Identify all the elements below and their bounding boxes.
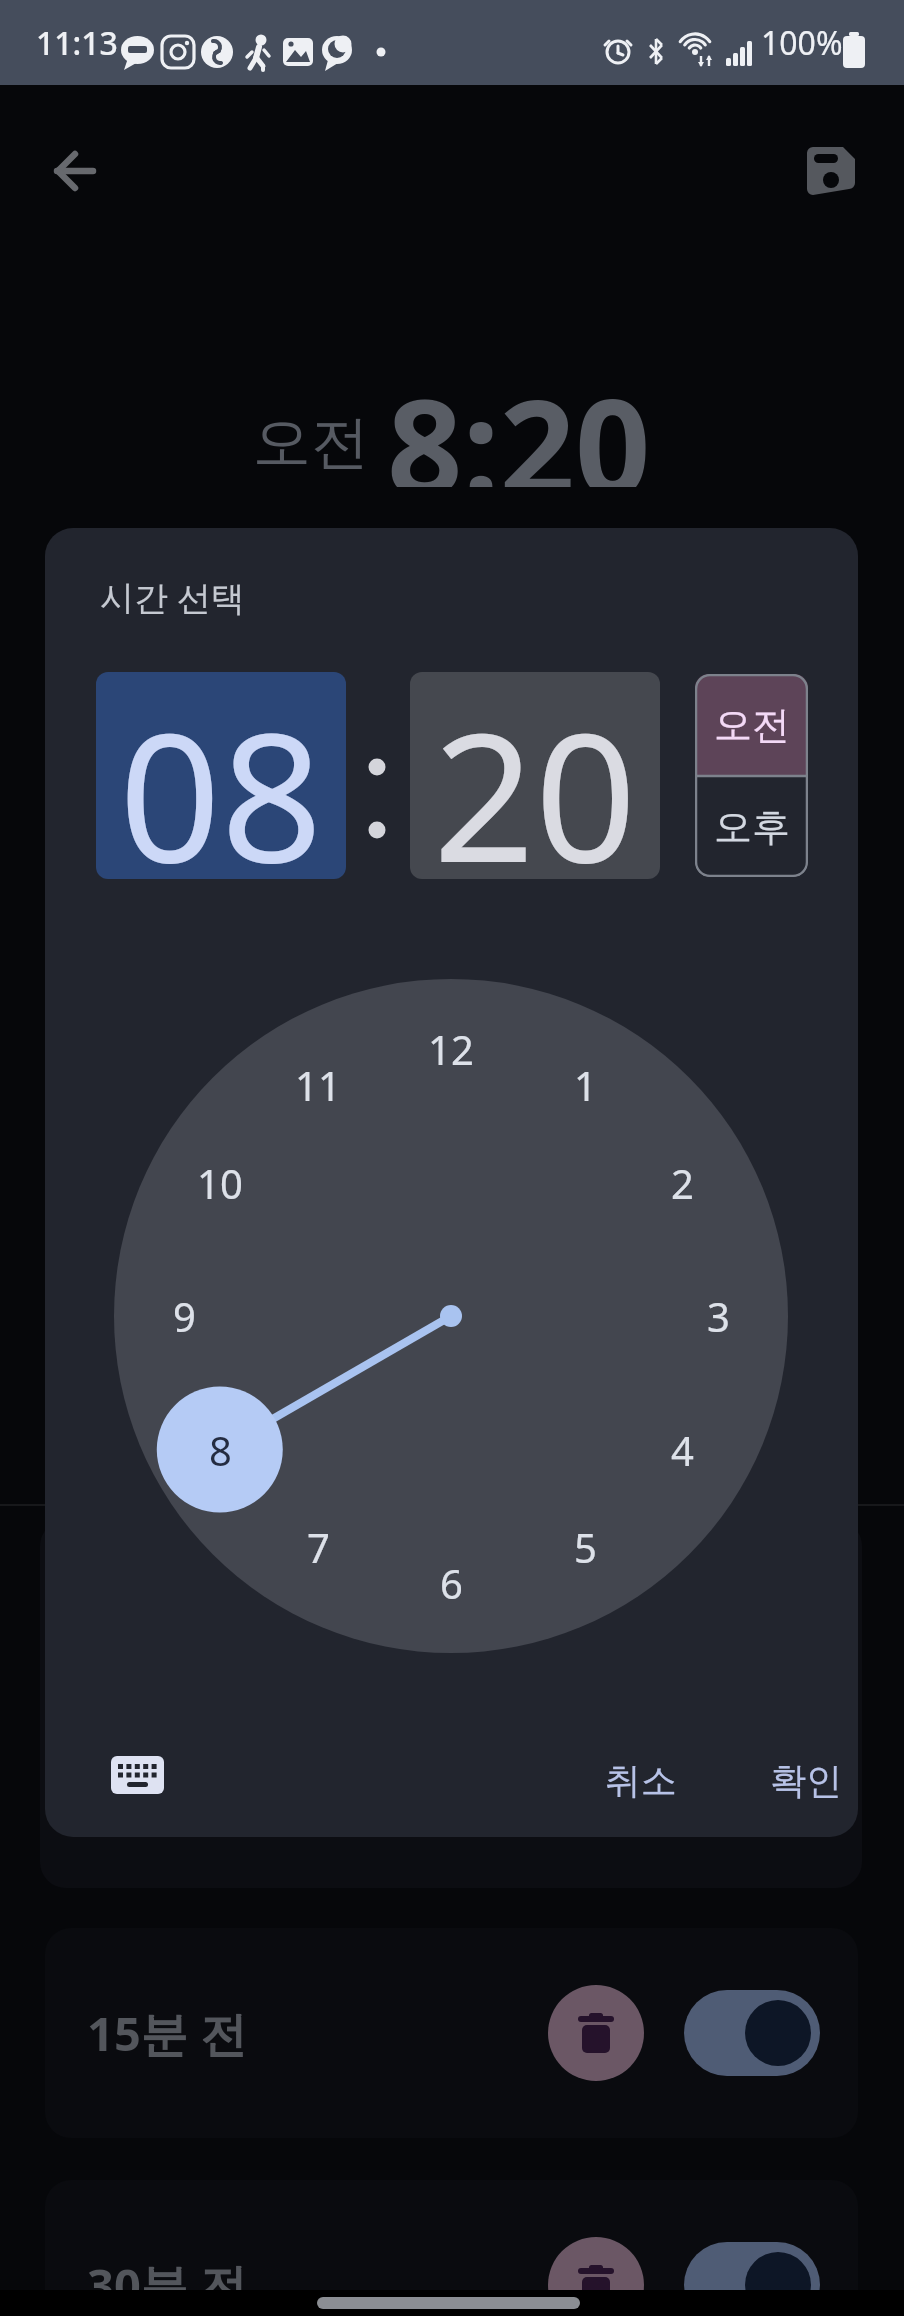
button[interactable] [548, 1985, 644, 2081]
button[interactable]: 08 [96, 672, 346, 879]
staticText: 오후 [714, 803, 790, 851]
staticText: 4 [671, 1423, 694, 1477]
staticText: 1 [574, 1058, 597, 1112]
staticText: 9 [173, 1289, 196, 1343]
button[interactable] [799, 139, 863, 203]
staticText: 30분 전 [87, 2253, 247, 2316]
staticText: 8:20 [387, 355, 651, 487]
staticText: 11 [295, 1058, 341, 1112]
button[interactable]: 확인 [756, 1740, 856, 1820]
staticText: 20 [433, 672, 637, 879]
staticText: 11:13 [36, 21, 118, 65]
button[interactable] [684, 1990, 820, 2076]
staticText: 2 [671, 1156, 694, 1210]
button[interactable]: 취소 [591, 1740, 691, 1820]
staticText: 8 [209, 1423, 232, 1477]
staticText: 확인 [770, 1758, 842, 1803]
button[interactable] [95, 1740, 180, 1810]
button[interactable]: 오후 [695, 776, 808, 877]
button[interactable] [684, 2242, 820, 2316]
staticText: 10 [197, 1156, 243, 1210]
staticText: 08 [119, 672, 323, 879]
staticText: 12 [428, 1022, 474, 1076]
staticText: 6 [440, 1556, 463, 1610]
staticText: 5 [574, 1520, 597, 1574]
staticText: 시간 선택 [100, 574, 245, 620]
staticText: 15분 전 [87, 2001, 247, 2065]
button[interactable]: 20 [410, 672, 660, 879]
staticText: 취소 [605, 1758, 677, 1803]
button[interactable]: 오전 [695, 674, 808, 776]
staticText: 100% [761, 21, 843, 65]
staticText: 7 [307, 1520, 330, 1574]
staticText: 3 [707, 1289, 730, 1343]
staticText: 오전 [253, 406, 369, 479]
staticText: 오전 [714, 701, 790, 749]
button[interactable] [43, 139, 107, 203]
button[interactable] [548, 2237, 644, 2316]
